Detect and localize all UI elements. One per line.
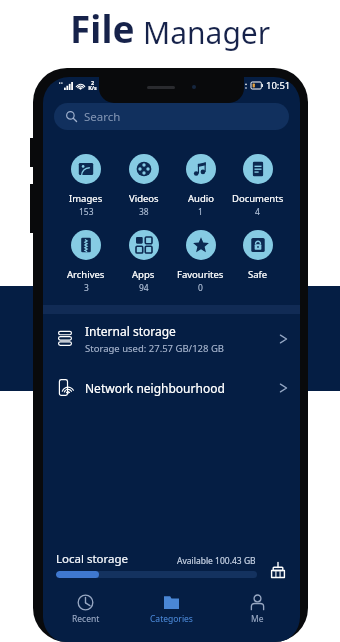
staticText: Available 100.43 GB xyxy=(177,555,256,567)
button[interactable]: Internal storage xyxy=(43,314,300,363)
staticText: 38 xyxy=(139,206,149,218)
staticText: 1 xyxy=(198,206,203,218)
staticText: 10:51 xyxy=(266,79,291,92)
button[interactable]: Audio xyxy=(172,154,229,218)
staticText: Network neighbourhood xyxy=(85,380,225,396)
staticText: 3 xyxy=(84,282,89,294)
button[interactable]: Network neighbourhood xyxy=(43,363,300,412)
button[interactable]: Favourites xyxy=(172,230,229,294)
button[interactable]: Search xyxy=(54,103,289,130)
staticText: Audio xyxy=(188,192,214,205)
staticText: Search xyxy=(84,109,121,125)
button[interactable]: Recent xyxy=(43,594,128,626)
staticText: Archives xyxy=(67,268,105,281)
staticText: Internal storage xyxy=(85,323,176,339)
staticText: Safe xyxy=(248,268,268,281)
button[interactable]: Images xyxy=(57,154,115,218)
button[interactable]: Documents xyxy=(229,154,286,218)
button[interactable]: Clean up storage xyxy=(270,562,286,578)
staticText: Apps xyxy=(132,268,155,281)
button[interactable]: Videos xyxy=(115,154,172,218)
staticText: 2 K/s xyxy=(88,79,97,92)
staticText: Categories xyxy=(150,613,193,625)
button[interactable]: Archives xyxy=(57,230,115,294)
staticText: File xyxy=(70,3,135,53)
button[interactable]: Me xyxy=(214,594,300,626)
staticText: 94 xyxy=(139,282,149,294)
staticText: Videos xyxy=(129,192,159,205)
staticText: Me xyxy=(251,613,264,625)
staticText: 0 xyxy=(198,282,203,294)
button[interactable]: Safe xyxy=(229,230,286,294)
staticText: Local storage xyxy=(56,551,129,567)
staticText: Recent xyxy=(72,613,100,625)
staticText: Favourites xyxy=(177,268,224,281)
staticText: 4 xyxy=(255,206,260,218)
staticText: 153 xyxy=(79,206,94,218)
button[interactable]: Apps xyxy=(115,230,172,294)
staticText: Documents xyxy=(232,192,284,205)
staticText: Storage used: 27.57 GB/128 GB xyxy=(85,342,225,355)
staticText: Manager xyxy=(143,12,271,53)
staticText: Images xyxy=(69,192,103,205)
button[interactable]: Categories xyxy=(128,594,214,626)
